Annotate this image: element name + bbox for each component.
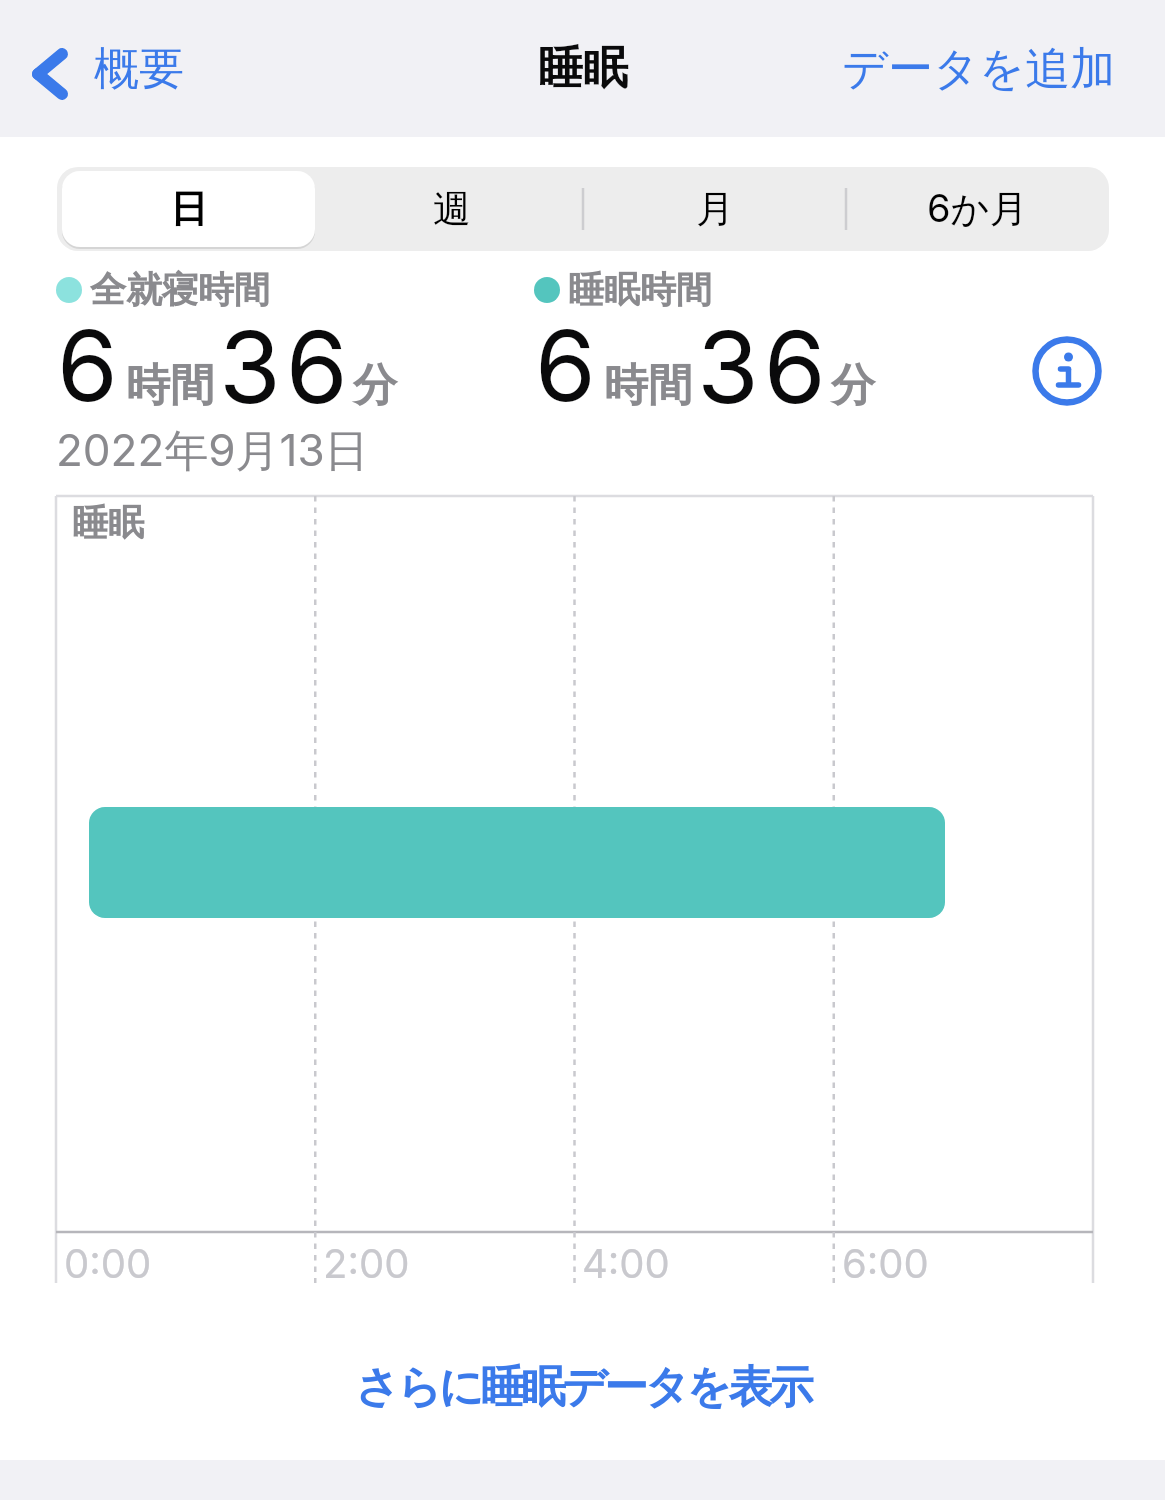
staticText: 分 <box>353 358 397 413</box>
staticText: 睡眠 <box>538 40 628 97</box>
staticText: 6:00 <box>842 1239 929 1287</box>
button[interactable]: 詳しい情報 <box>1032 336 1102 406</box>
staticText: 6 <box>57 306 118 425</box>
staticText: 時間 <box>126 358 214 413</box>
button[interactable]: 月 <box>583 167 846 251</box>
staticText: 2022年9月13日 <box>56 423 369 479</box>
staticText: 36 <box>697 306 831 427</box>
staticText: 分 <box>831 358 875 413</box>
button[interactable]: 週 <box>320 167 583 251</box>
staticText: 週 <box>433 185 471 233</box>
staticText: 36 <box>219 306 353 427</box>
staticText: 全就寝時間 <box>90 267 270 312</box>
staticText: 0:00 <box>64 1239 152 1287</box>
staticText: 概要 <box>94 41 184 98</box>
staticText: 2:00 <box>323 1239 410 1287</box>
button[interactable]: 日 <box>57 167 320 251</box>
staticText: 睡眠時間 <box>568 267 712 312</box>
staticText: 睡眠 <box>72 500 144 545</box>
staticText: 4:00 <box>582 1239 670 1287</box>
button[interactable]: データを追加 <box>842 32 1116 106</box>
staticText: 6か月 <box>927 185 1028 233</box>
staticText: 時間 <box>604 358 692 413</box>
button[interactable]: さらに睡眠データを表示 <box>0 1330 1165 1445</box>
staticText: さらに睡眠データを表示 <box>355 1360 810 1415</box>
staticText: 6 <box>535 306 596 425</box>
staticText: 月 <box>696 185 734 233</box>
button[interactable]: 概要に戻る <box>30 28 184 110</box>
staticText: データを追加 <box>842 41 1116 98</box>
staticText: 日 <box>170 185 208 233</box>
button[interactable]: 6か月 <box>846 167 1109 251</box>
